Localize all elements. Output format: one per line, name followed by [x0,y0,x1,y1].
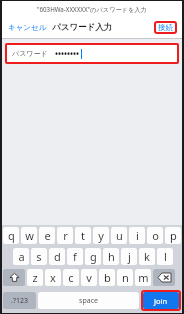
staticText: z [32,270,38,285]
button[interactable]: n [117,269,133,286]
button[interactable]: u [111,227,127,244]
staticText: t [81,228,85,243]
staticText: h [108,249,115,264]
staticText: q [8,228,15,243]
button[interactable]: p [165,227,181,244]
button[interactable]: h [103,248,119,265]
button[interactable]: o [147,227,163,244]
button[interactable]: d [49,248,65,265]
button[interactable]: l [157,248,173,265]
staticText: Join [154,296,168,306]
button[interactable]: y [93,227,109,244]
staticText: •••••••• [55,48,80,59]
button[interactable]: f [67,248,83,265]
staticText: 接続 [158,23,173,32]
button[interactable]: Delete [153,269,175,286]
button[interactable]: b [99,269,115,286]
staticText: r [63,228,68,243]
button[interactable]: i [129,227,145,244]
button[interactable]: w [21,227,37,244]
staticText: d [54,249,61,264]
button[interactable]: x [45,269,61,286]
staticText: x [50,270,56,285]
button[interactable]: k [139,248,155,265]
button[interactable]: パスワード [7,45,177,62]
staticText: パスワード [12,49,48,58]
button[interactable]: m [135,269,151,286]
staticText: space [79,296,98,306]
button[interactable]: z [27,269,43,286]
staticText: l [164,249,167,264]
staticText: u [116,228,123,243]
staticText: m [138,270,149,285]
staticText: b [104,270,111,285]
button[interactable]: g [85,248,101,265]
staticText: キャンセル [8,23,47,32]
staticText: パスワード入力 [52,22,113,33]
button[interactable]: q [3,227,19,244]
staticText: f [73,249,77,264]
staticText: s [36,249,42,264]
staticText: k [144,249,150,264]
button[interactable]: .?123 [3,292,36,309]
button[interactable]: t [75,227,91,244]
staticText: c [68,270,74,285]
button[interactable]: Shift [3,269,25,286]
staticText: y [98,228,104,243]
staticText: n [122,270,129,285]
staticText: "603HWa-XXXXXX"のパスワードを入力 [37,5,147,13]
button[interactable]: j [121,248,137,265]
button[interactable]: space [38,292,139,309]
button[interactable]: Join [143,292,179,309]
staticText: p [170,228,177,243]
button[interactable]: e [39,227,55,244]
staticText: w [25,228,34,243]
button[interactable]: a [13,248,29,265]
staticText: a [18,249,25,264]
button[interactable]: 接続 [154,21,177,34]
staticText: .?123 [11,296,28,306]
button[interactable]: c [63,269,79,286]
staticText: e [44,228,51,243]
staticText: i [136,228,139,243]
staticText: v [86,270,92,285]
button[interactable]: r [57,227,73,244]
button[interactable]: キャンセル [6,20,49,35]
button[interactable]: s [31,248,47,265]
staticText: o [152,228,159,243]
staticText: g [90,249,97,264]
staticText: j [128,249,131,264]
button[interactable]: v [81,269,97,286]
